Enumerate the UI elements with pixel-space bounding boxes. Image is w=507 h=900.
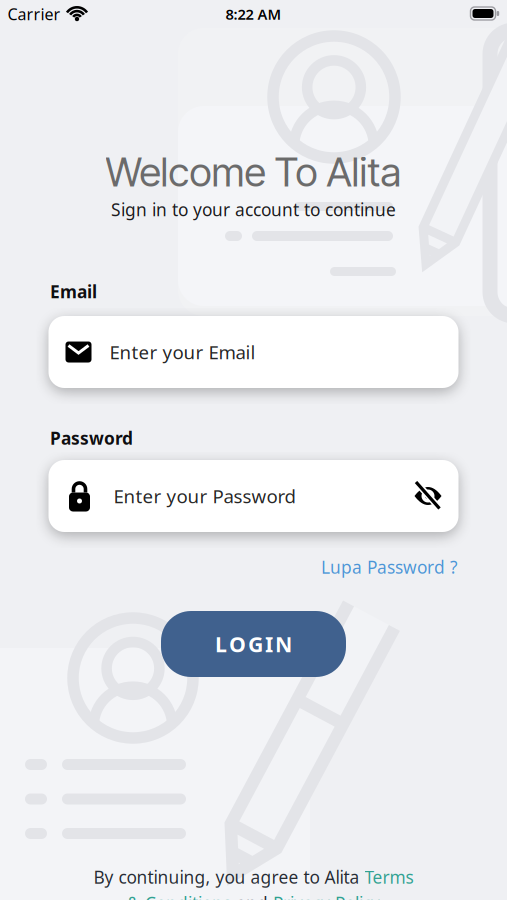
staticText: Email bbox=[50, 280, 97, 303]
staticText: 8:22 AM bbox=[225, 4, 281, 24]
staticText: & Conditions bbox=[127, 891, 231, 900]
button[interactable]: Privacy Policy bbox=[273, 891, 380, 900]
staticText: By continuing, you agree to Alita bbox=[93, 865, 364, 888]
staticText: Enter your Email bbox=[109, 340, 255, 364]
staticText: Carrier bbox=[7, 3, 60, 25]
staticText: Lupa Password ? bbox=[321, 555, 458, 578]
staticText: L O G I N bbox=[215, 630, 292, 658]
button[interactable]: Enter your Email bbox=[48, 316, 458, 388]
button[interactable]: L O G I N bbox=[161, 611, 346, 677]
staticText: Privacy Policy bbox=[273, 891, 380, 900]
staticText: Sign in to your account to continue bbox=[111, 198, 396, 221]
staticText: Enter your Password bbox=[113, 484, 295, 508]
button[interactable] bbox=[414, 485, 458, 507]
staticText: Password bbox=[50, 426, 133, 449]
staticText: and bbox=[231, 891, 273, 900]
staticText: Welcome To Alita bbox=[105, 148, 401, 196]
button[interactable]: Lupa Password ? bbox=[321, 555, 458, 578]
button[interactable]: Terms bbox=[364, 865, 413, 888]
button[interactable]: & Conditions bbox=[127, 891, 231, 900]
staticText: Terms bbox=[364, 865, 413, 888]
button[interactable]: Enter your Password bbox=[48, 460, 458, 532]
